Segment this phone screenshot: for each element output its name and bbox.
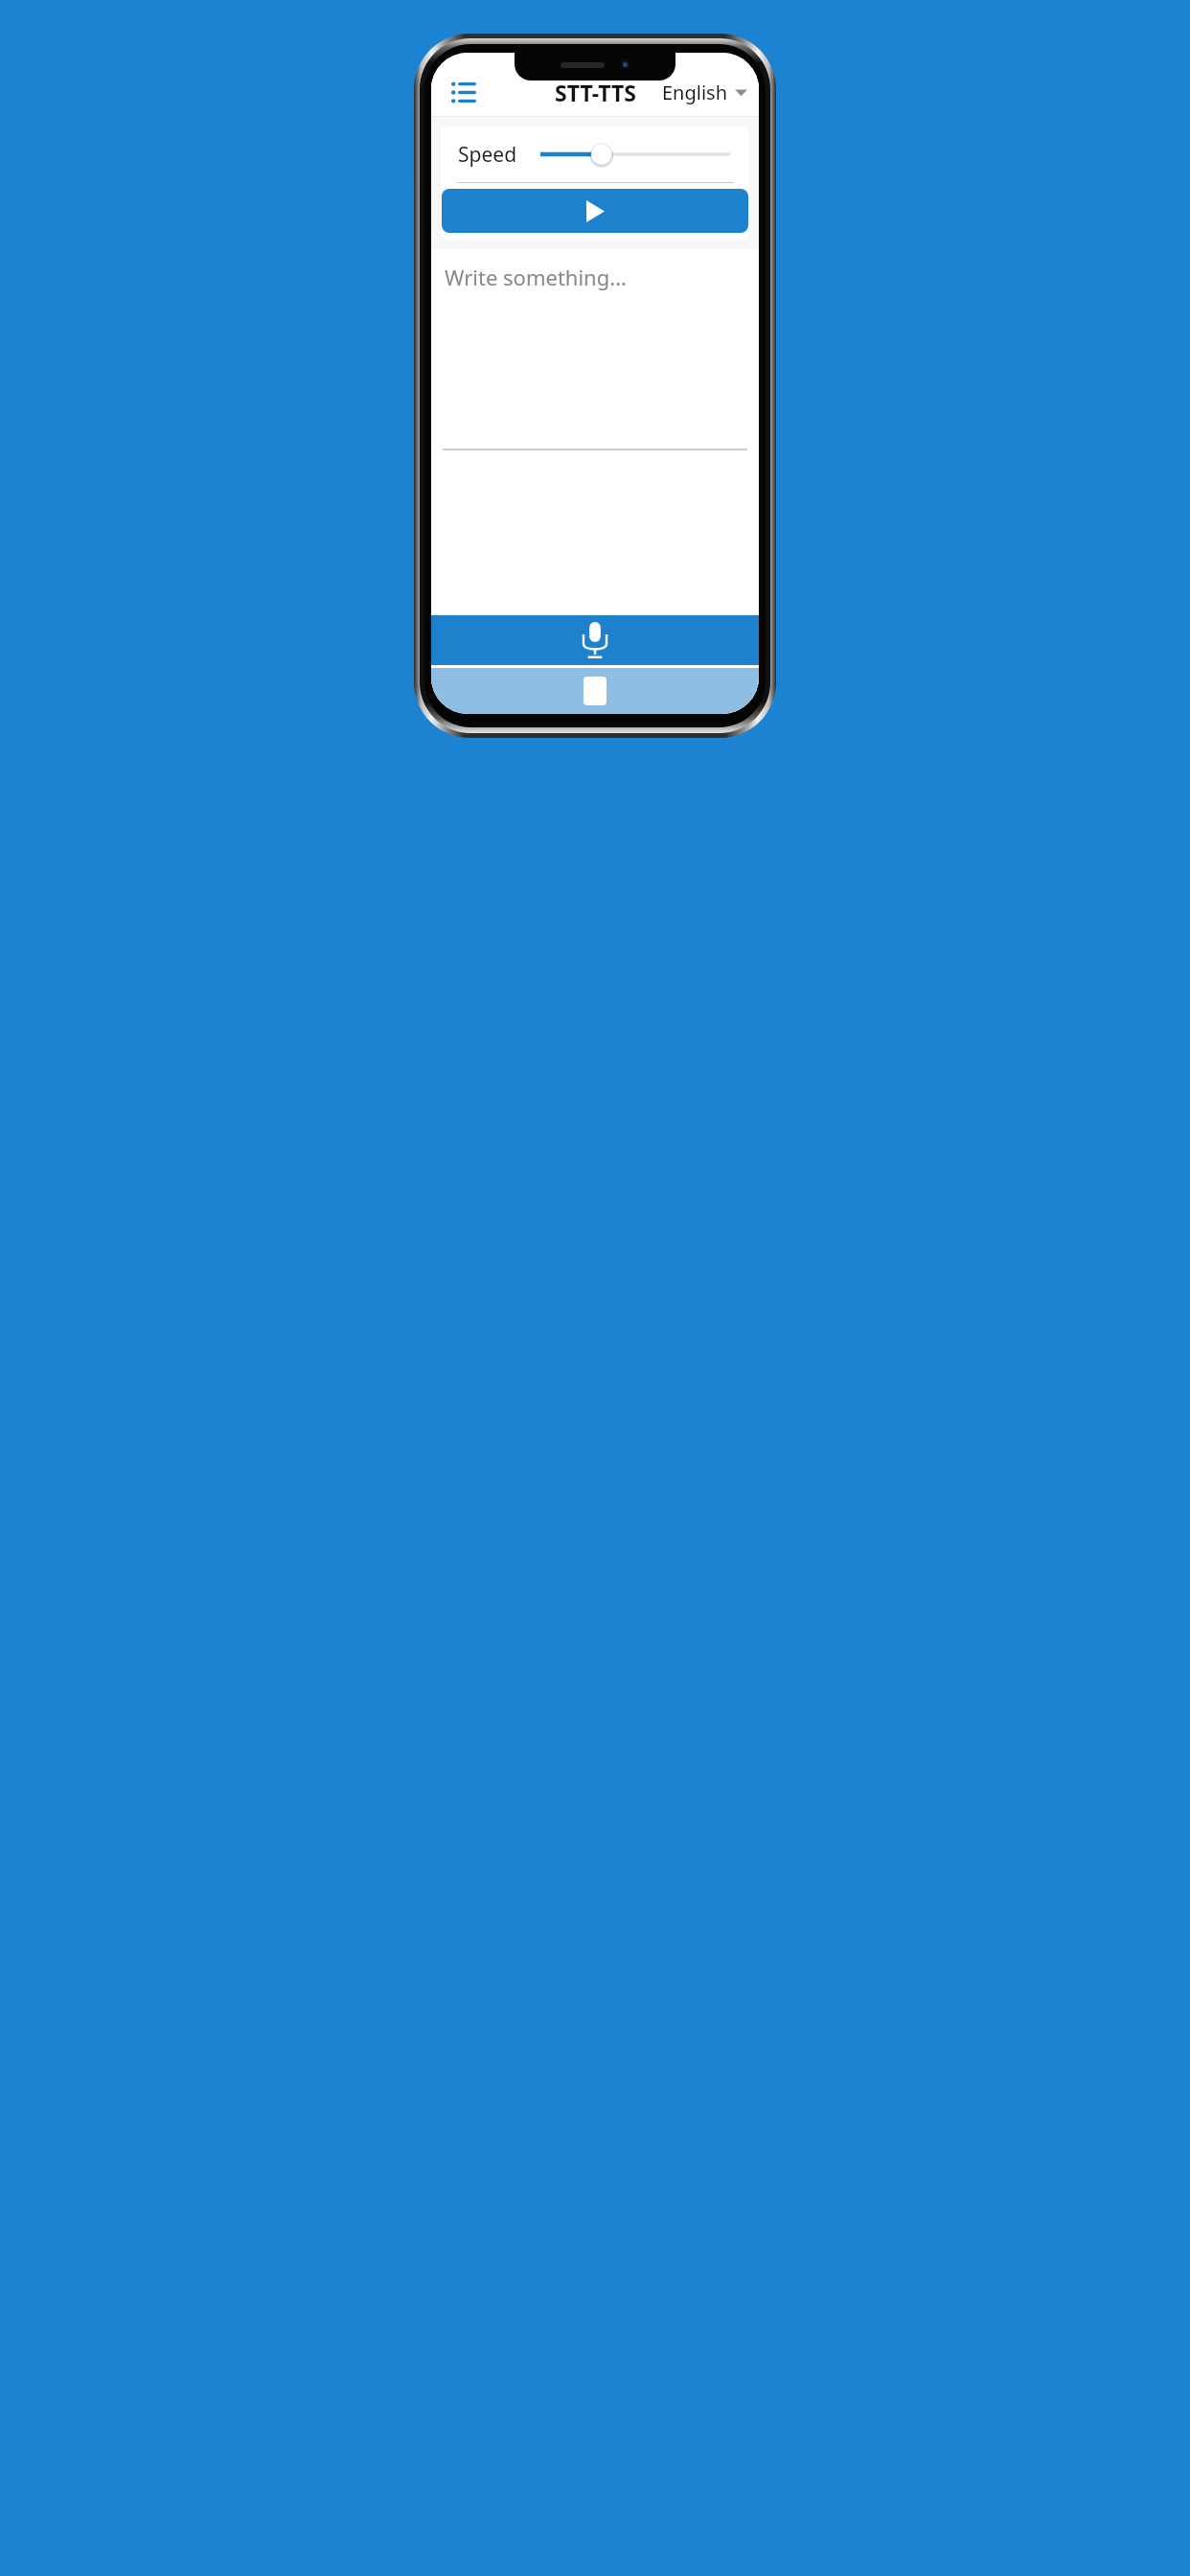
button[interactable]: English bbox=[658, 74, 751, 111]
staticText: STT-TTS bbox=[555, 78, 636, 107]
button[interactable]: Write something... bbox=[431, 249, 759, 448]
button[interactable]: Start voice recording bbox=[431, 615, 759, 665]
staticText: Speed bbox=[458, 141, 517, 169]
staticText: Write something... bbox=[445, 263, 627, 291]
button[interactable]: Open menu bbox=[445, 73, 483, 111]
button[interactable] bbox=[540, 135, 730, 173]
staticText: English bbox=[662, 80, 728, 105]
button[interactable]: Play speech bbox=[442, 189, 748, 233]
button[interactable]: Stop bbox=[431, 668, 759, 714]
